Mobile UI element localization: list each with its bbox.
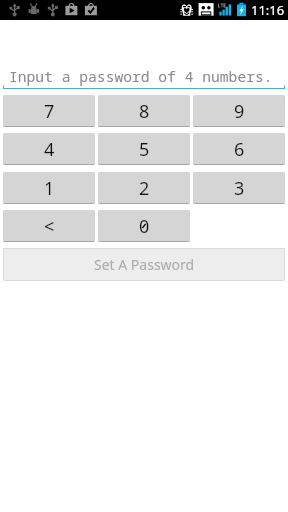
button[interactable]: Set A Password <box>3 248 285 281</box>
button[interactable]: 4 <box>3 133 95 165</box>
staticText: Set A Password <box>94 255 195 274</box>
staticText: 4 <box>44 137 55 162</box>
button[interactable]: 8 <box>98 95 190 127</box>
button[interactable]: Input a password of 4 numbers. <box>3 62 285 89</box>
staticText: 1 <box>44 176 55 201</box>
button[interactable]: < <box>3 210 95 242</box>
staticText: 9 <box>234 99 245 124</box>
staticText: 6 <box>234 137 245 162</box>
staticText: 7 <box>44 99 55 124</box>
button[interactable]: 9 <box>193 95 285 127</box>
staticText: 5 <box>139 137 150 162</box>
staticText: < <box>44 214 55 239</box>
staticText: Input a password of 4 numbers. <box>9 66 273 86</box>
button[interactable]: 3 <box>193 172 285 204</box>
button[interactable]: 5 <box>98 133 190 165</box>
staticText: 2 <box>139 176 150 201</box>
button[interactable]: 1 <box>3 172 95 204</box>
staticText: 11:16 <box>251 1 285 19</box>
staticText: 3 <box>234 176 245 201</box>
button[interactable]: 0 <box>98 210 190 242</box>
staticText: 0 <box>139 214 150 239</box>
staticText: 8 <box>139 99 150 124</box>
button[interactable]: 7 <box>3 95 95 127</box>
button[interactable]: 2 <box>98 172 190 204</box>
button[interactable]: 6 <box>193 133 285 165</box>
